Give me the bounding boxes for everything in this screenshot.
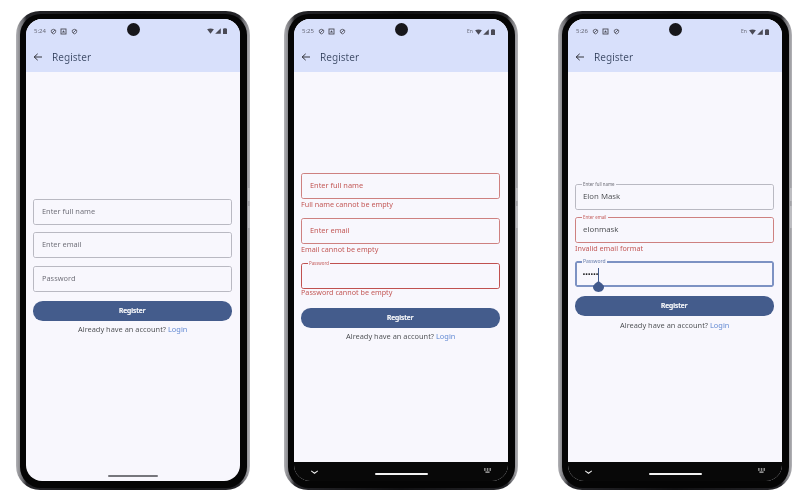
staticText: 5:25 [302,27,314,35]
button[interactable]: Switch keyboard [756,465,767,476]
staticText: Enter full name [42,206,96,216]
staticText: Enter full name [310,180,364,190]
staticText: Full name cannot be empty [301,199,393,209]
staticText: Enter email [42,239,82,249]
staticText: Register [594,50,634,64]
staticText: Invalid email format [575,243,644,253]
staticText: Register [119,306,146,315]
button[interactable]: Switch keyboard [482,465,493,476]
staticText: Already have an account? [346,331,436,341]
staticText: Password cannot be empty [301,287,393,297]
button[interactable]: Register [575,296,774,316]
button[interactable]: Enter full name [33,199,232,225]
staticText: Register [320,50,360,64]
button[interactable]: Login [436,331,456,341]
button[interactable]: Login [168,324,188,334]
button[interactable]: Back [29,48,47,66]
button[interactable]: Enter email [301,218,500,244]
staticText: Email cannot be empty [301,244,379,254]
button[interactable]: Enter full name [301,173,500,199]
button[interactable]: Register [301,308,500,328]
staticText: 5:24 [34,27,46,35]
staticText: Already have an account? [620,320,710,330]
staticText: Enter full name [583,181,615,187]
button[interactable]: elonmask [575,217,774,243]
staticText: Enter email [583,214,607,220]
button[interactable]: Back [297,48,315,66]
staticText: En [467,28,473,35]
button[interactable]: Hide keyboard [583,466,594,477]
staticText: Elon Mask [583,191,621,202]
button[interactable]: Login [710,320,730,330]
button[interactable]: Register [33,301,232,321]
button[interactable]: Back [571,48,589,66]
staticText: Password [583,258,606,265]
staticText: Register [387,313,414,322]
staticText: En [741,28,747,35]
button[interactable]: Enter email [33,232,232,258]
staticText: Register [52,50,92,64]
staticText: Password [42,273,76,283]
staticText: elonmask [583,224,619,235]
button[interactable]: Password [33,266,232,292]
staticText: Password [309,260,329,266]
staticText: Register [661,301,688,310]
button[interactable]: Hide keyboard [309,466,320,477]
staticText: 5:26 [576,27,588,35]
staticText: Already have an account? [78,324,168,334]
button[interactable] [301,263,500,289]
button[interactable]: Elon Mask [575,184,774,210]
staticText: Enter email [310,225,350,235]
button[interactable] [575,261,774,287]
